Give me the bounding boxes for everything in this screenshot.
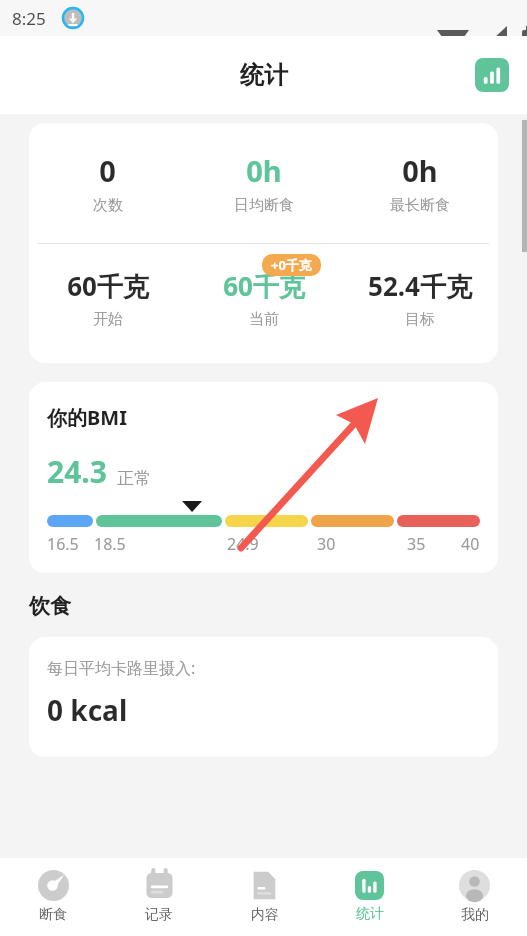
staticText: 52.4千克 bbox=[368, 268, 472, 304]
staticText: 0h bbox=[246, 151, 282, 190]
staticText: 目标 bbox=[405, 310, 435, 329]
button[interactable]: 断食 bbox=[0, 858, 106, 936]
staticText: 18.5 bbox=[94, 533, 126, 555]
staticText: 当前 bbox=[249, 310, 279, 329]
button[interactable]: 记录 bbox=[106, 858, 212, 936]
button[interactable]: 每日平均卡路里摄入: bbox=[29, 637, 498, 757]
button[interactable]: 内容 bbox=[212, 858, 317, 936]
staticText: 每日平均卡路里摄入: bbox=[47, 657, 196, 679]
staticText: 饮食 bbox=[29, 593, 71, 619]
staticText: 开始 bbox=[93, 310, 123, 329]
button[interactable]: 你的BMI bbox=[29, 382, 498, 573]
button[interactable]: 我的 bbox=[422, 858, 527, 936]
staticText: 30 bbox=[317, 533, 336, 555]
staticText: 0 kcal bbox=[47, 691, 128, 729]
staticText: 35 bbox=[407, 533, 426, 555]
staticText: 最长断食 bbox=[390, 196, 450, 215]
staticText: +0千克 bbox=[271, 256, 312, 274]
staticText: 8:25 bbox=[12, 7, 46, 30]
staticText: 40 bbox=[461, 533, 480, 555]
staticText: 日均断食 bbox=[234, 196, 294, 215]
staticText: 0h bbox=[402, 151, 438, 190]
button[interactable]: 统计 bbox=[317, 858, 422, 936]
staticText: 60千克 bbox=[223, 268, 305, 304]
button[interactable]: Charts bbox=[475, 58, 509, 92]
staticText: 24.9 bbox=[227, 533, 259, 555]
staticText: 你的BMI bbox=[47, 404, 127, 431]
staticText: 0 bbox=[99, 151, 116, 190]
staticText: 60千克 bbox=[67, 268, 149, 304]
staticText: 断食 bbox=[39, 906, 67, 924]
staticText: 次数 bbox=[93, 196, 123, 215]
staticText: 16.5 bbox=[47, 533, 79, 555]
staticText: 我的 bbox=[461, 906, 489, 924]
staticText: 记录 bbox=[145, 906, 173, 924]
staticText: 统计 bbox=[240, 60, 288, 90]
button[interactable]: 0 bbox=[29, 123, 498, 363]
staticText: 内容 bbox=[251, 906, 279, 924]
staticText: 正常 bbox=[117, 468, 151, 489]
staticText: 统计 bbox=[356, 905, 384, 923]
staticText: 24.3 bbox=[47, 451, 107, 492]
